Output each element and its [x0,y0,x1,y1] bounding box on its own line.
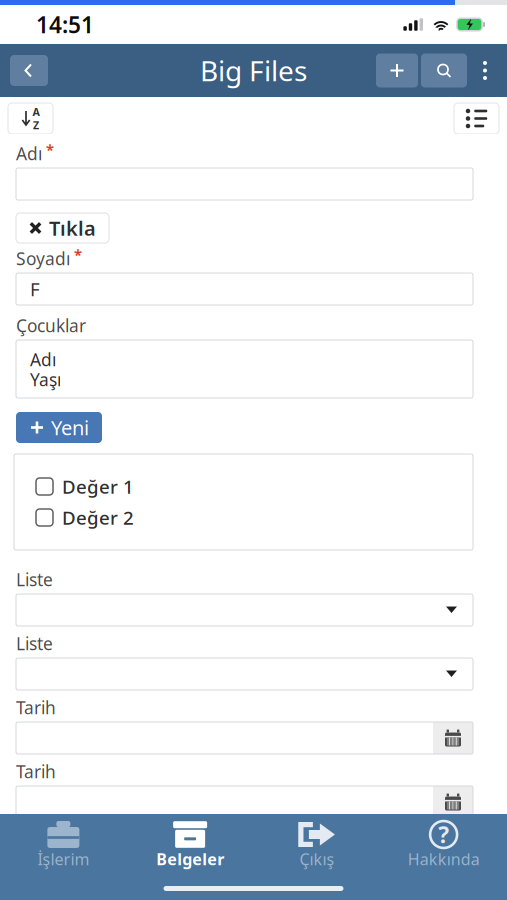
staticText: Değer 1 [62,474,134,499]
staticText: Belgeler [156,848,224,870]
button[interactable]: Çıkış [253,821,380,876]
button[interactable]: Değer 2 [14,502,473,533]
button[interactable]: Sort [8,103,53,134]
button[interactable]: Değer 1 [14,471,473,502]
staticText: Z [33,118,39,132]
button[interactable]: Yeni [16,412,102,443]
staticText: Soyadı [16,247,70,270]
button[interactable]: List view [454,103,499,134]
staticText: Liste [16,632,53,655]
button[interactable]: Back [10,55,48,86]
staticText: * [74,245,82,264]
button[interactable]: Pick date [433,786,473,818]
button[interactable]: Pick date [433,722,473,754]
staticText: 14:51 [36,9,94,39]
button[interactable]: ? [380,821,507,876]
button[interactable]: İşlerim [0,821,127,876]
staticText: Adı [16,142,42,165]
staticText: Çıkış [299,848,334,870]
staticText: Değer 2 [62,505,134,530]
button[interactable]: Tıkla [16,213,109,243]
staticText: İşlerim [37,848,89,870]
staticText: ? [438,819,449,849]
button[interactable]: Search [421,53,467,87]
staticText: Hakkında [408,848,480,870]
staticText: Liste [16,568,53,591]
staticText: * [46,140,54,159]
staticText: A [32,105,39,119]
staticText: Adı [30,348,56,371]
staticText: Tarih [16,760,56,783]
staticText: Yaşı [30,368,61,391]
staticText: Tarih [16,696,56,719]
button[interactable]: More options [471,53,499,87]
staticText: F [30,277,40,301]
button[interactable]: Belgeler [127,821,254,876]
button[interactable]: Add [376,53,418,87]
staticText: Tıkla [49,215,96,241]
staticText: Yeni [51,414,89,441]
staticText: Çocuklar [16,314,86,337]
staticText: Big Files [200,52,307,89]
